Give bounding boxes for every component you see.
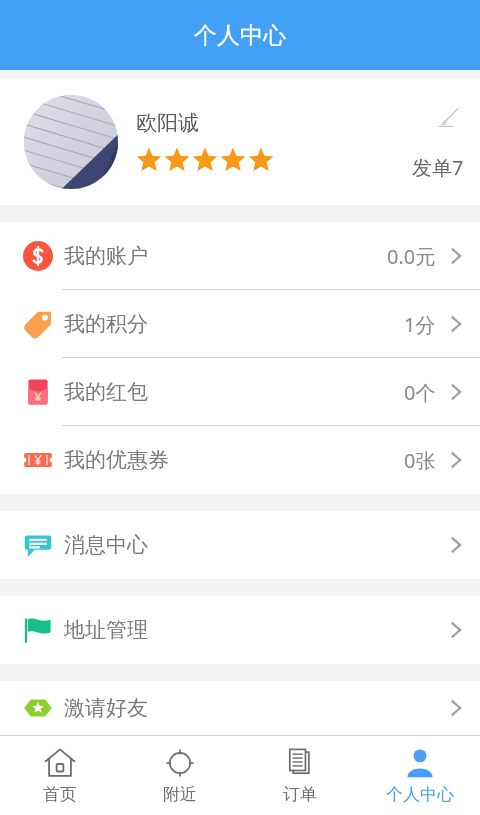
staticText: 首页 [43,784,77,805]
staticText: 附近 [163,784,197,805]
button[interactable]: 我的账户 [0,222,480,290]
staticText: 0张 [404,447,436,474]
button[interactable]: 订单 [240,736,360,815]
staticText: 我的账户 [64,243,148,269]
staticText: 激请好友 [64,695,148,721]
button[interactable]: 首页 [0,736,120,815]
staticText: 消息中心 [64,532,148,558]
staticText: 我的积分 [64,311,148,337]
button[interactable]: 我的红包 [0,358,480,426]
button[interactable]: 我的优惠券 [0,426,480,494]
staticText: 订单 [283,784,317,805]
button[interactable]: Edit profile [434,102,464,132]
staticText: 0.0元 [387,243,436,270]
button[interactable]: 附近 [120,736,240,815]
button[interactable]: 我的积分 [0,290,480,358]
staticText: 0个 [404,379,436,406]
staticText: 地址管理 [64,617,148,643]
button[interactable]: 地址管理 [0,596,480,664]
staticText: 个人中心 [386,784,454,805]
staticText: 1分 [404,311,436,338]
button[interactable]: 消息中心 [0,511,480,579]
staticText: 欧阳诚 [136,110,199,136]
button[interactable]: 个人中心 [360,736,480,815]
button[interactable]: 激请好友 [0,681,480,735]
staticText: 我的红包 [64,379,148,405]
staticText: 我的优惠券 [64,447,169,473]
staticText: 发单7 [412,154,464,181]
staticText: 个人中心 [194,21,286,50]
button[interactable]: 欧阳诚 [0,78,480,205]
